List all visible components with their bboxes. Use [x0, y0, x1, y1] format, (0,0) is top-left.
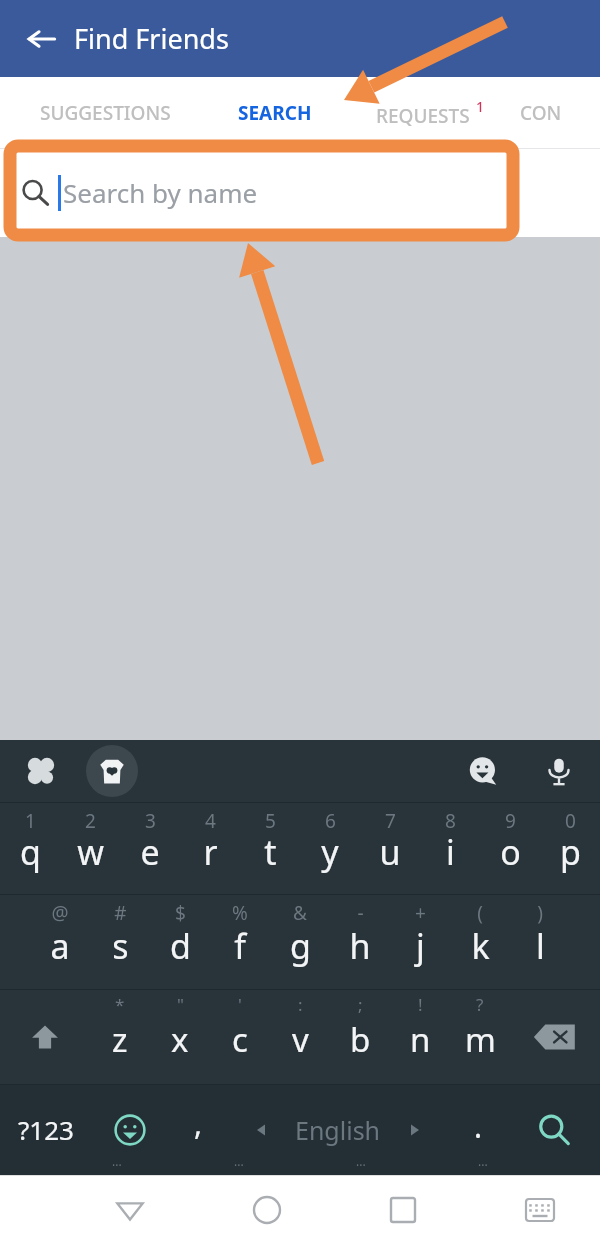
- button[interactable]: $: [150, 894, 210, 989]
- staticText: y: [321, 829, 339, 875]
- staticText: CON: [520, 100, 562, 126]
- staticText: SUGGESTIONS: [40, 100, 171, 126]
- button[interactable]: @: [30, 894, 90, 989]
- staticText: !: [418, 993, 423, 1016]
- button[interactable]: 5: [240, 802, 300, 894]
- button[interactable]: Emoji: [460, 748, 506, 794]
- staticText: 9: [505, 808, 516, 834]
- button[interactable]: #: [90, 894, 150, 989]
- staticText: ': [238, 993, 242, 1016]
- staticText: k: [471, 923, 490, 969]
- button[interactable]: (: [450, 894, 510, 989]
- button[interactable]: +: [390, 894, 450, 989]
- button[interactable]: *: [90, 989, 150, 1084]
- staticText: ": [177, 993, 184, 1016]
- button[interactable]: 8: [420, 802, 480, 894]
- button[interactable]: 9: [480, 802, 540, 894]
- button[interactable]: Home: [237, 1180, 297, 1240]
- staticText: 5: [265, 808, 276, 834]
- button[interactable]: 2: [60, 802, 120, 894]
- staticText: o: [500, 829, 521, 875]
- button[interactable]: :: [270, 989, 330, 1084]
- staticText: 2: [85, 808, 96, 834]
- staticText: -: [357, 900, 364, 926]
- staticText: w: [77, 829, 104, 875]
- button[interactable]: 1: [0, 802, 60, 894]
- staticText: ...: [356, 1153, 366, 1169]
- staticText: m: [465, 1017, 496, 1062]
- button[interactable]: Shift: [0, 989, 90, 1084]
- staticText: l: [536, 923, 545, 969]
- button[interactable]: Search: [508, 1084, 600, 1175]
- button[interactable]: 0: [540, 802, 600, 894]
- button[interactable]: Stickers: [86, 745, 138, 797]
- button[interactable]: ,: [168, 1084, 228, 1175]
- button[interactable]: Backspace: [510, 989, 600, 1084]
- button[interactable]: %: [210, 894, 270, 989]
- staticText: i: [446, 829, 455, 875]
- button[interactable]: Clipboard: [18, 748, 64, 794]
- staticText: n: [410, 1017, 431, 1062]
- button[interactable]: CON: [520, 77, 600, 148]
- button[interactable]: 3: [120, 802, 180, 894]
- button[interactable]: Keyboard: [510, 1180, 570, 1240]
- staticText: r: [203, 829, 218, 875]
- button[interactable]: -: [330, 894, 390, 989]
- staticText: SEARCH: [238, 100, 312, 126]
- staticText: 6: [325, 808, 336, 834]
- staticText: English: [295, 1113, 381, 1147]
- button[interactable]: Emoji keyboard: [92, 1084, 168, 1175]
- staticText: %: [232, 900, 248, 926]
- staticText: ;: [358, 993, 363, 1016]
- button[interactable]: SEARCH: [210, 77, 340, 148]
- button[interactable]: 4: [180, 802, 240, 894]
- staticText: +: [415, 900, 426, 926]
- staticText: ?: [476, 993, 484, 1016]
- staticText: 4: [205, 808, 216, 834]
- button[interactable]: ): [510, 894, 570, 989]
- staticText: ,: [194, 1103, 203, 1144]
- button[interactable]: Back: [100, 1180, 160, 1240]
- staticText: f: [234, 923, 246, 969]
- button[interactable]: Back: [16, 13, 68, 65]
- staticText: *: [115, 993, 125, 1016]
- staticText: ?123: [18, 1112, 74, 1147]
- staticText: g: [290, 923, 311, 969]
- staticText: ...: [112, 1153, 122, 1169]
- button[interactable]: .: [448, 1084, 508, 1175]
- staticText: #: [114, 900, 127, 926]
- staticText: x: [171, 1017, 189, 1062]
- staticText: h: [349, 923, 371, 969]
- staticText: e: [140, 829, 160, 875]
- button[interactable]: 6: [300, 802, 360, 894]
- button[interactable]: ?123: [0, 1084, 92, 1175]
- staticText: 3: [145, 808, 156, 834]
- staticText: 1: [25, 808, 36, 834]
- button[interactable]: REQUESTS: [340, 77, 520, 148]
- button[interactable]: 7: [360, 802, 420, 894]
- staticText: v: [292, 1017, 309, 1062]
- button[interactable]: ?: [450, 989, 510, 1084]
- staticText: j: [416, 923, 425, 969]
- staticText: ): [537, 900, 543, 926]
- button[interactable]: ": [150, 989, 210, 1084]
- button[interactable]: English: [228, 1084, 448, 1175]
- staticText: ...: [234, 1153, 244, 1169]
- button[interactable]: Voice input: [536, 748, 582, 794]
- button[interactable]: Recents: [373, 1180, 433, 1240]
- button[interactable]: &: [270, 894, 330, 989]
- button[interactable]: SUGGESTIONS: [0, 77, 210, 148]
- button[interactable]: Search by name: [20, 148, 600, 237]
- staticText: 0: [565, 808, 576, 834]
- staticText: (: [477, 900, 483, 926]
- staticText: :: [298, 993, 303, 1016]
- button[interactable]: ': [210, 989, 270, 1084]
- staticText: t: [264, 829, 277, 875]
- button[interactable]: !: [390, 989, 450, 1084]
- staticText: 8: [445, 808, 456, 834]
- button[interactable]: ;: [330, 989, 390, 1084]
- staticText: Find Friends: [74, 20, 229, 57]
- staticText: ...: [478, 1153, 488, 1169]
- staticText: $: [175, 900, 186, 926]
- staticText: c: [232, 1017, 248, 1062]
